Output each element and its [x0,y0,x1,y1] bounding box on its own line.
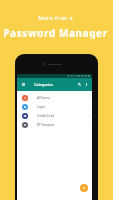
button[interactable]: Credit Card [17,111,92,120]
button[interactable]: Login [17,102,92,111]
staticText: All Items [37,96,51,100]
button[interactable]: More options [82,78,90,91]
staticText: Password Manager [3,26,108,39]
button[interactable]: Search [75,78,83,91]
button[interactable]: Add [80,184,88,192]
button[interactable]: ID Passport [17,120,92,129]
staticText: Categories [34,82,53,87]
button[interactable]: Menu [19,78,27,91]
staticText: Login [37,105,46,109]
button[interactable]: All Items [17,93,92,102]
staticText: ID Passport [37,123,55,127]
staticText: Credit Card [37,114,54,118]
staticText: More than a [38,14,73,21]
